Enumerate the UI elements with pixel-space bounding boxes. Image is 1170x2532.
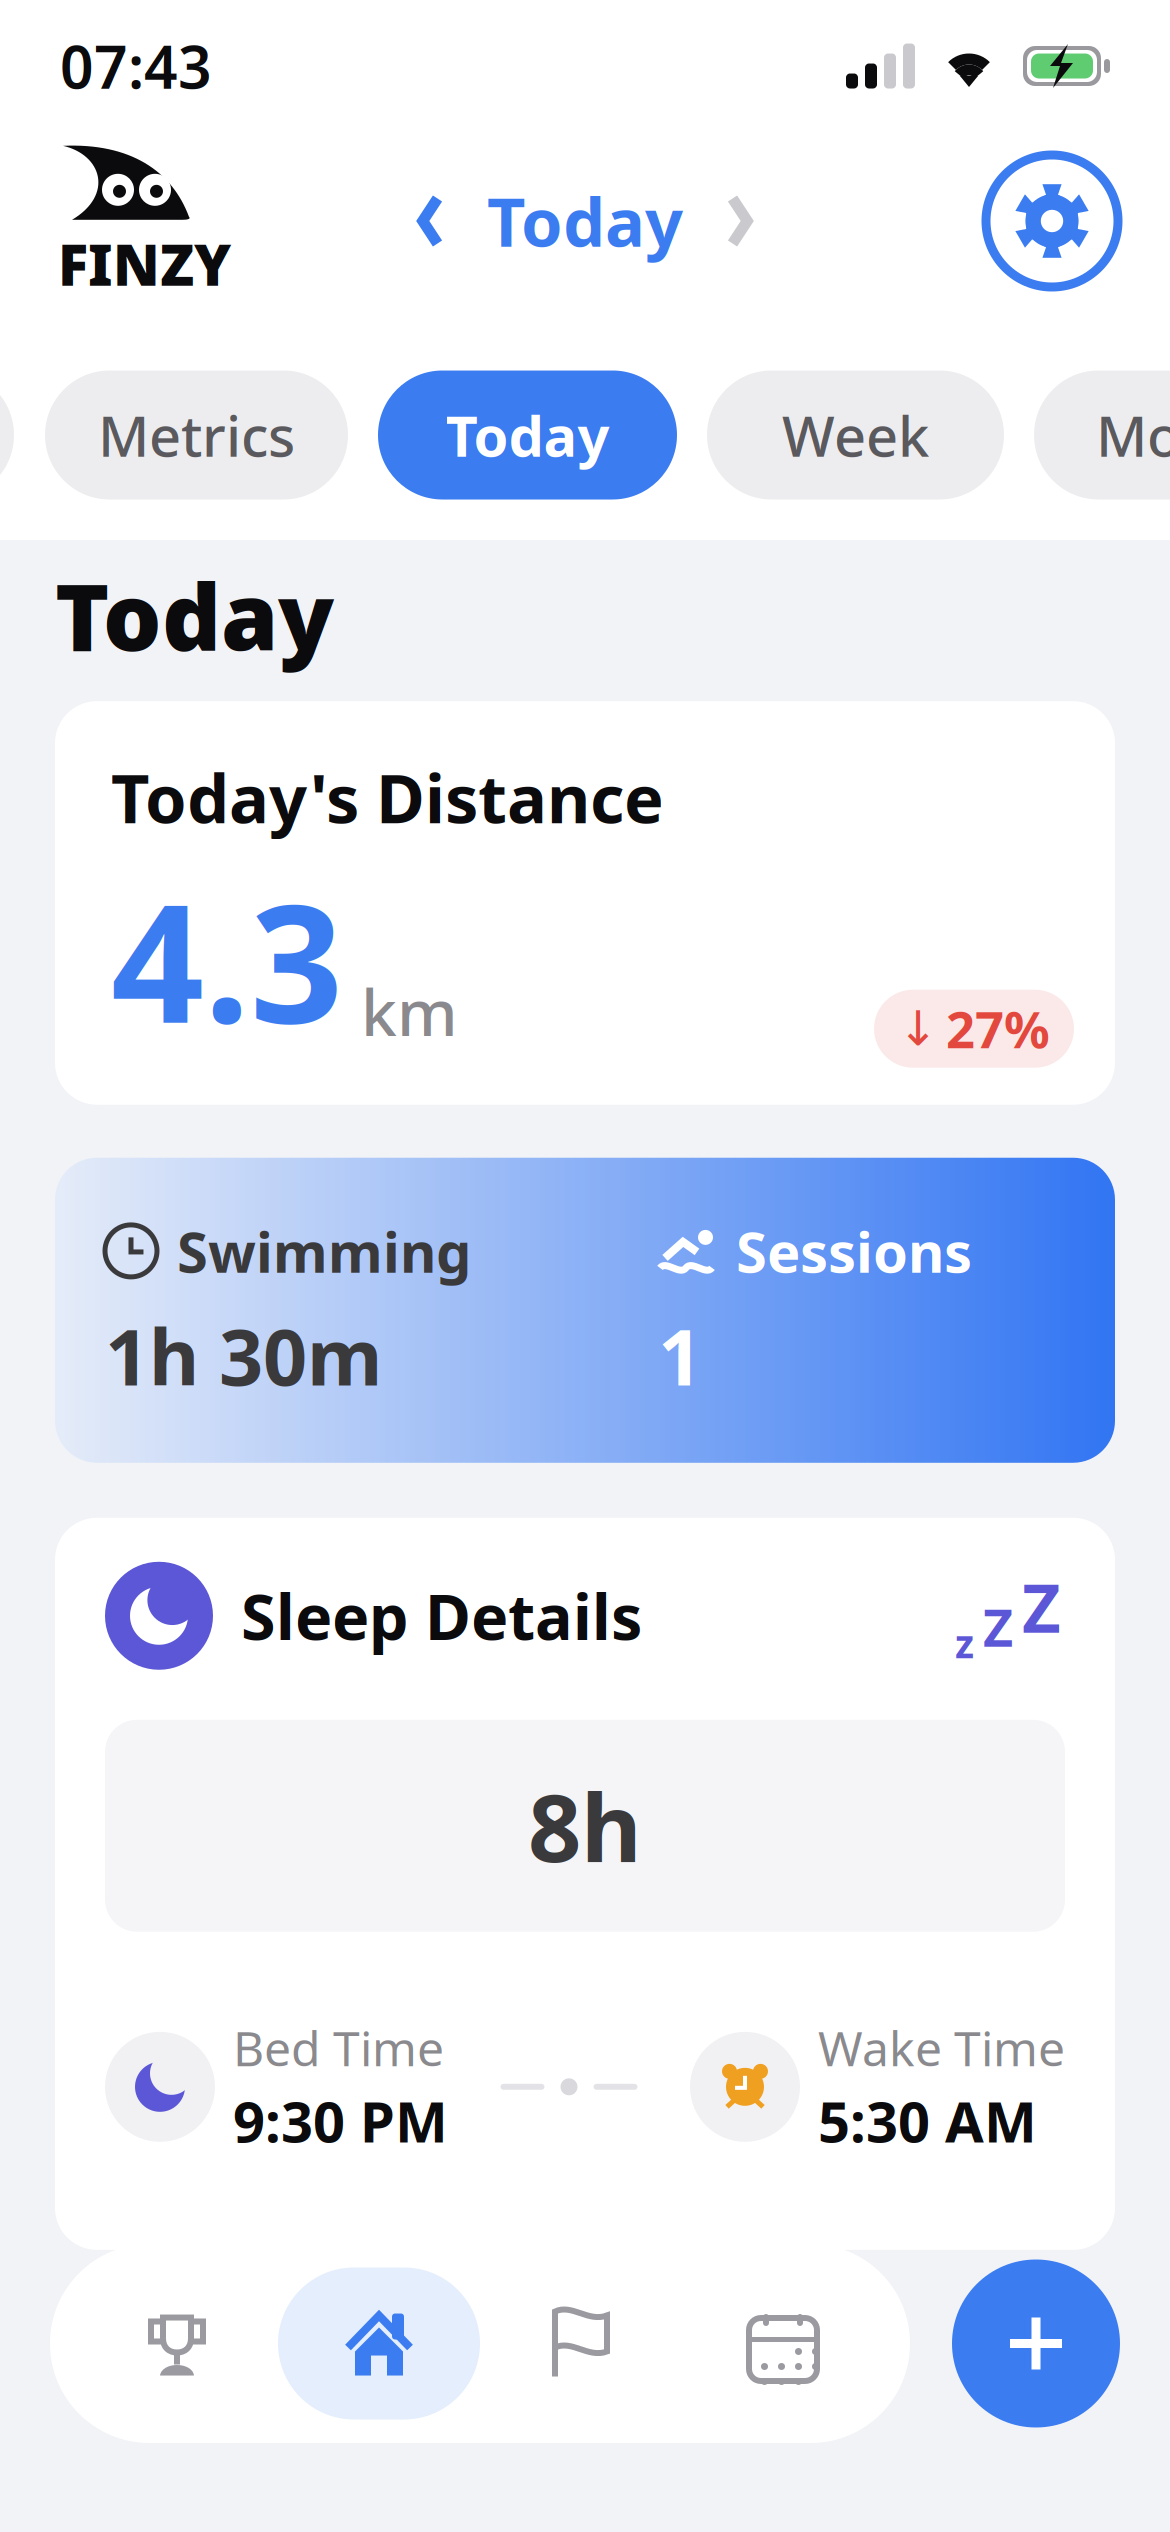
staticText: Today [487, 177, 683, 265]
button[interactable]: Week [707, 370, 1004, 499]
staticText: 5:30 AM [818, 2083, 1037, 2158]
button[interactable]: Calendar [682, 2244, 884, 2443]
staticText: Sessions [736, 1214, 972, 1288]
button[interactable]: Achievements [76, 2244, 278, 2443]
staticText: Wake Time [818, 2016, 1065, 2079]
staticText: Today [55, 554, 334, 676]
button[interactable]: Month [1034, 370, 1170, 499]
staticText: FINZY [58, 227, 231, 301]
staticText: Week [782, 398, 929, 472]
staticText: Metrics [98, 398, 295, 472]
staticText: km [361, 969, 458, 1054]
staticText: 07:43 [60, 27, 212, 105]
staticText: Sleep Details [241, 1574, 642, 1657]
staticText: 27% [946, 995, 1050, 1062]
staticText: Swimming [177, 1214, 471, 1288]
staticText: Today [445, 398, 609, 472]
staticText: Bed Time [233, 2016, 444, 2079]
button[interactable]: Today [378, 370, 677, 499]
staticText: 9:30 PM [233, 2083, 448, 2158]
button[interactable]: Home [278, 2244, 480, 2443]
staticText: z [955, 1618, 974, 1669]
button[interactable]: Add [952, 2259, 1120, 2427]
button[interactable]: Goals [480, 2244, 682, 2443]
staticText: ↓ [898, 1001, 938, 1056]
button[interactable]: Next day [709, 179, 771, 263]
button[interactable]: Settings [982, 151, 1122, 291]
button[interactable]: Metrics [45, 370, 348, 499]
staticText: Month [1096, 398, 1170, 472]
staticText: 1h 30m [105, 1304, 382, 1407]
staticText: 1 [658, 1304, 702, 1407]
staticText: Z [983, 1592, 1013, 1661]
staticText: 8h [528, 1764, 642, 1888]
button[interactable]: Previous day [399, 179, 461, 263]
staticText: 4.3 [111, 852, 343, 1068]
staticText: Z [1022, 1562, 1061, 1651]
staticText: Today's Distance [111, 753, 664, 842]
